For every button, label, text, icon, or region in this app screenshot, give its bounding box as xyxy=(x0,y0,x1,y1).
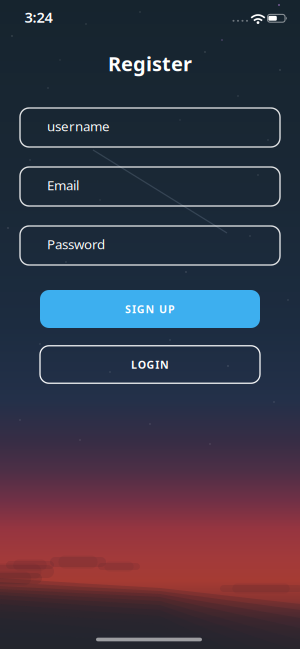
button[interactable]: username xyxy=(20,108,280,147)
staticText: Password xyxy=(47,235,105,253)
button[interactable]: Password xyxy=(20,226,280,265)
staticText: SIGN UP xyxy=(125,302,175,316)
staticText: 3:24 xyxy=(24,7,52,27)
staticText: Email xyxy=(47,176,79,194)
button[interactable]: Email xyxy=(20,167,280,206)
button[interactable]: LOGIN xyxy=(40,346,260,383)
staticText: LOGIN xyxy=(131,357,169,372)
button[interactable]: SIGN UP xyxy=(40,290,260,328)
staticText: Register xyxy=(108,50,192,77)
staticText: username xyxy=(47,117,110,135)
